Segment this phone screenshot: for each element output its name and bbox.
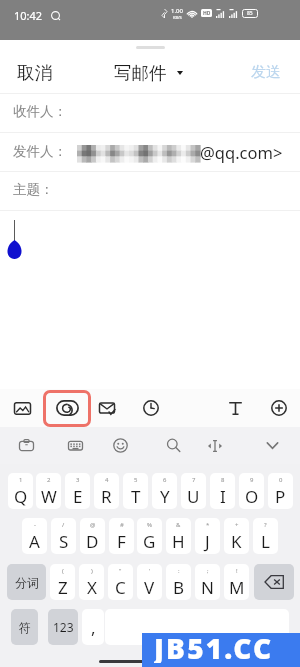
- button[interactable]: 2: [36, 473, 61, 509]
- button[interactable]: +: [224, 518, 249, 554]
- staticText: F: [117, 530, 126, 553]
- staticText: S: [59, 530, 69, 553]
- button[interactable]: ": [108, 564, 133, 600]
- button[interactable]: 符: [11, 609, 38, 645]
- staticText: *: [206, 521, 210, 529]
- button[interactable]: Add: [263, 389, 295, 427]
- staticText: @qq.com>: [200, 141, 283, 163]
- button[interactable]: @: [80, 518, 105, 554]
- staticText: @: [90, 521, 96, 529]
- staticText: %: [147, 521, 152, 529]
- button[interactable]: Text format: [219, 389, 251, 427]
- staticText: :: [178, 567, 180, 575]
- staticText: N: [201, 576, 214, 599]
- staticText: 85: [247, 10, 253, 17]
- staticText: W: [41, 485, 57, 508]
- button[interactable]: /: [51, 518, 76, 554]
- staticText: 符: [19, 620, 31, 635]
- staticText: T: [131, 485, 141, 508]
- staticText: #: [120, 521, 124, 529]
- staticText: JB51.CC: [154, 629, 274, 663]
- staticText: 0: [279, 476, 283, 484]
- button[interactable]: 发送: [232, 55, 300, 90]
- button[interactable]: %: [137, 518, 162, 554]
- staticText: B: [173, 576, 185, 599]
- button[interactable]: Backspace: [254, 564, 294, 600]
- staticText: 分词: [15, 575, 39, 590]
- staticText: ': [149, 567, 151, 575]
- staticText: ): [91, 567, 93, 575]
- button[interactable]: 7: [181, 473, 206, 509]
- staticText: 5: [134, 476, 138, 484]
- button[interactable]: Emoji: [104, 427, 136, 464]
- staticText: E: [73, 485, 83, 508]
- button[interactable]: 8: [210, 473, 235, 509]
- staticText: Z: [58, 576, 68, 599]
- button[interactable]: 分词: [7, 564, 46, 600]
- staticText: 3: [76, 476, 80, 484]
- button[interactable]: Clock: [135, 389, 167, 427]
- staticText: +: [235, 521, 239, 529]
- staticText: 收件人：: [13, 103, 67, 120]
- button[interactable]: 写邮件: [108, 54, 189, 92]
- button[interactable]: 3: [65, 473, 90, 509]
- staticText: G: [143, 530, 156, 553]
- staticText: O: [245, 485, 259, 508]
- staticText: 4: [105, 476, 109, 484]
- button[interactable]: 4: [94, 473, 119, 509]
- staticText: 6: [163, 476, 167, 484]
- button[interactable]: :: [166, 564, 191, 600]
- staticText: V: [144, 576, 155, 599]
- button[interactable]: Keyboard: [59, 427, 91, 464]
- staticText: Y: [160, 485, 170, 508]
- staticText: Q: [14, 485, 28, 508]
- staticText: A: [29, 530, 40, 553]
- staticText: 10:42: [14, 8, 43, 23]
- staticText: (: [62, 567, 64, 575]
- button[interactable]: ?: [253, 518, 278, 554]
- button[interactable]: 9: [239, 473, 264, 509]
- button[interactable]: Search: [157, 427, 189, 464]
- button[interactable]: Mail: [91, 389, 123, 427]
- button[interactable]: [105, 609, 289, 645]
- staticText: ,: [91, 616, 96, 639]
- staticText: ;: [207, 567, 209, 575]
- button[interactable]: -: [22, 518, 47, 554]
- button[interactable]: 6: [152, 473, 177, 509]
- staticText: KB/S: [173, 15, 182, 19]
- staticText: ?: [264, 521, 267, 529]
- staticText: HD: [203, 10, 211, 17]
- staticText: U: [187, 485, 200, 508]
- button[interactable]: ,: [82, 609, 104, 645]
- button[interactable]: Clipboard: [10, 427, 42, 464]
- staticText: 主题：: [13, 181, 54, 198]
- button[interactable]: ;: [195, 564, 220, 600]
- button[interactable]: 0: [268, 473, 293, 509]
- staticText: 2: [47, 476, 51, 484]
- button[interactable]: ): [79, 564, 104, 600]
- button[interactable]: 123: [48, 609, 78, 645]
- staticText: 8: [221, 476, 225, 484]
- staticText: K: [231, 530, 242, 553]
- staticText: 1: [19, 476, 23, 484]
- button[interactable]: 5: [123, 473, 148, 509]
- button[interactable]: &: [166, 518, 191, 554]
- button[interactable]: Collapse: [256, 427, 288, 464]
- staticText: L: [261, 530, 270, 553]
- staticText: C: [115, 576, 126, 599]
- button[interactable]: Move cursor: [199, 427, 231, 464]
- button[interactable]: ': [137, 564, 162, 600]
- button[interactable]: 1: [8, 473, 33, 509]
- button[interactable]: !: [224, 564, 249, 600]
- button[interactable]: 取消: [0, 54, 69, 92]
- staticText: H: [172, 530, 185, 553]
- button[interactable]: #: [109, 518, 134, 554]
- button[interactable]: Link: [51, 389, 83, 427]
- button[interactable]: (: [50, 564, 75, 600]
- button[interactable]: *: [195, 518, 220, 554]
- button[interactable]: Image: [6, 389, 38, 427]
- staticText: D: [86, 530, 99, 553]
- staticText: 9: [250, 476, 254, 484]
- staticText: -: [34, 521, 36, 529]
- staticText: /: [62, 521, 65, 529]
